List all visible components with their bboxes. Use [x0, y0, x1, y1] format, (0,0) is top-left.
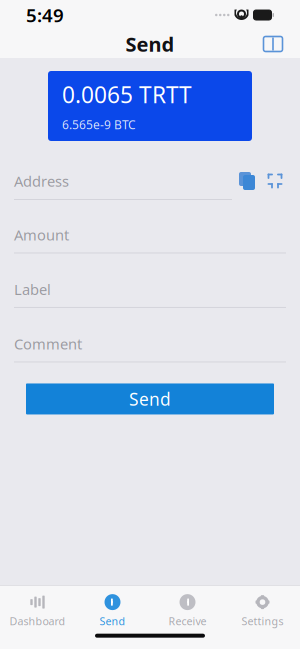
staticText: 0.0065 TRTT [62, 79, 192, 110]
staticText: Amount [14, 225, 69, 244]
button[interactable]: Paste address [236, 170, 258, 192]
button[interactable]: Comment [14, 308, 286, 362]
staticText: Send [125, 31, 174, 57]
staticText: 5:49 [26, 3, 64, 27]
staticText: Comment [14, 334, 82, 353]
button[interactable]: Amount [14, 200, 286, 253]
staticText: 6.565e-9 BTC [62, 117, 136, 132]
staticText: Settings [241, 614, 283, 628]
staticText: Send [129, 387, 171, 410]
button[interactable]: Dashboard [0, 592, 75, 630]
staticText: Address [14, 171, 69, 191]
staticText: Dashboard [9, 614, 65, 628]
button[interactable]: Receive [150, 592, 225, 630]
button[interactable]: Address book [256, 29, 290, 59]
button[interactable]: Label [14, 253, 286, 308]
staticText: Receive [168, 614, 206, 628]
button[interactable]: Send [75, 592, 150, 630]
button[interactable]: Settings [225, 592, 300, 630]
staticText: Label [14, 279, 51, 299]
button[interactable]: Send [26, 383, 274, 414]
staticText: Send [99, 614, 125, 628]
button[interactable]: Scan QR code [264, 170, 286, 192]
